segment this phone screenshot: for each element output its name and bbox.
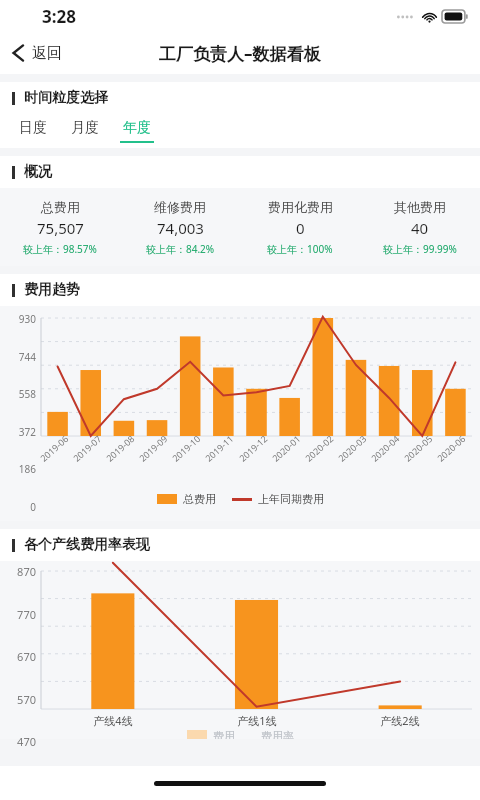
staticText: 较上年：84.2%	[146, 242, 215, 256]
staticText: 2019-11	[202, 432, 236, 464]
staticText: 其他费用	[394, 199, 446, 215]
staticText: 2020-05	[401, 432, 435, 464]
staticText: 2019-08	[103, 432, 137, 464]
staticText: 产线2线	[372, 713, 428, 728]
staticText: 2019-12	[236, 432, 270, 464]
staticText: 74,003	[157, 218, 204, 238]
staticText: 较上年：100%	[267, 242, 333, 256]
staticText: 较上年：99.99%	[383, 242, 457, 256]
staticText: 570	[0, 692, 36, 707]
button[interactable]: 费用化费用	[240, 199, 360, 256]
button[interactable]: 日度	[12, 117, 54, 145]
staticText: 概况	[24, 163, 52, 181]
staticText: 年度	[123, 119, 151, 137]
staticText: 2019-10	[169, 432, 203, 464]
staticText: 3:28	[42, 5, 76, 28]
staticText: 2019-07	[70, 432, 104, 464]
staticText: 670	[0, 649, 36, 664]
staticText: 0	[0, 500, 36, 514]
staticText: 2020-02	[302, 432, 336, 464]
staticText: 总费用	[183, 492, 216, 506]
staticText: 各个产线费用率表现	[24, 536, 150, 554]
staticText: 2020-01	[269, 432, 303, 464]
staticText: 费用	[213, 729, 235, 739]
staticText: 月度	[71, 119, 99, 137]
staticText: 费用趋势	[24, 281, 80, 299]
staticText: 186	[0, 462, 36, 476]
button[interactable]: 年度	[116, 117, 158, 145]
staticText: 930	[0, 312, 36, 326]
staticText: 上年同期费用	[258, 492, 324, 506]
staticText: 返回	[32, 44, 62, 63]
staticText: 0	[296, 218, 305, 238]
staticText: 40	[411, 218, 429, 238]
staticText: 产线4线	[85, 713, 141, 728]
staticText: 日度	[19, 119, 47, 137]
button[interactable]: 返回	[0, 39, 72, 67]
staticText: 维修费用	[154, 199, 206, 215]
staticText: 470	[0, 734, 36, 749]
staticText: 744	[0, 350, 36, 364]
staticText: 2019-09	[136, 432, 170, 464]
staticText: 工厂负责人–数据看板	[159, 42, 321, 65]
staticText: 2020-03	[335, 432, 369, 464]
staticText: 产线1线	[229, 713, 285, 728]
staticText: 770	[0, 607, 36, 622]
staticText: 75,507	[37, 218, 84, 238]
staticText: 558	[0, 387, 36, 401]
staticText: 870	[0, 564, 36, 579]
staticText: 较上年：98.57%	[23, 242, 97, 256]
staticText: 总费用	[41, 199, 80, 215]
button[interactable]: 维修费用	[120, 199, 240, 256]
button[interactable]: 总费用	[0, 199, 120, 256]
staticText: 费用率	[261, 729, 294, 739]
staticText: 费用化费用	[268, 199, 333, 215]
staticText: 时间粒度选择	[24, 89, 108, 107]
staticText: 2020-06	[434, 432, 468, 464]
button[interactable]: 其他费用	[360, 199, 480, 256]
staticText: 2020-04	[368, 432, 402, 464]
staticText: 372	[0, 425, 36, 439]
staticText: 2019-06	[37, 432, 71, 464]
button[interactable]: 月度	[64, 117, 106, 145]
